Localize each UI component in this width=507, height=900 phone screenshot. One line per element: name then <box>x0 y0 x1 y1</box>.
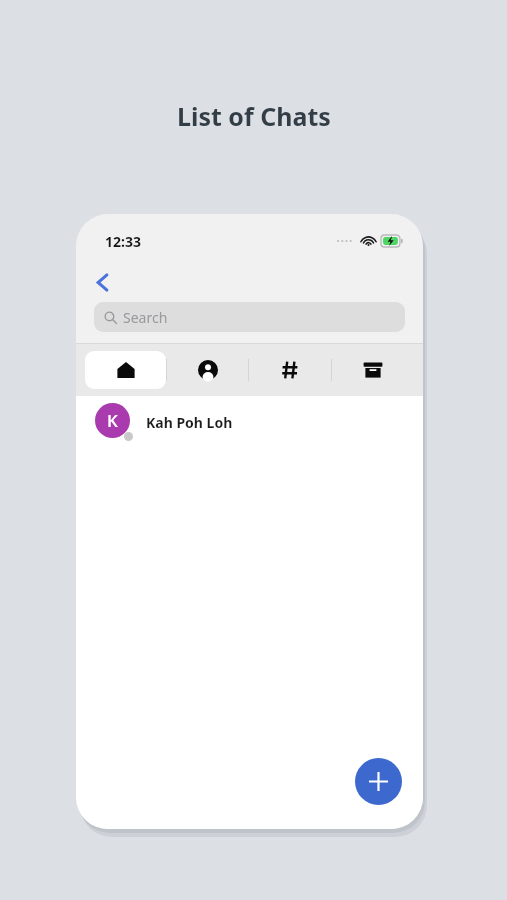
staticText: 12:33 <box>105 232 141 251</box>
staticText: Kah Poh Loh <box>146 413 233 432</box>
staticText: Search <box>123 308 168 327</box>
staticText: List of Chats <box>177 99 331 133</box>
button[interactable]: K <box>76 396 423 448</box>
button[interactable]: Contacts <box>167 351 248 389</box>
button[interactable]: Back <box>76 262 128 302</box>
staticText: K <box>107 409 118 432</box>
button[interactable]: Search <box>94 302 405 332</box>
button[interactable]: Home <box>85 351 166 389</box>
button[interactable]: Channels <box>249 351 331 389</box>
button[interactable]: New chat <box>355 758 402 805</box>
button[interactable]: Archive <box>332 351 414 389</box>
